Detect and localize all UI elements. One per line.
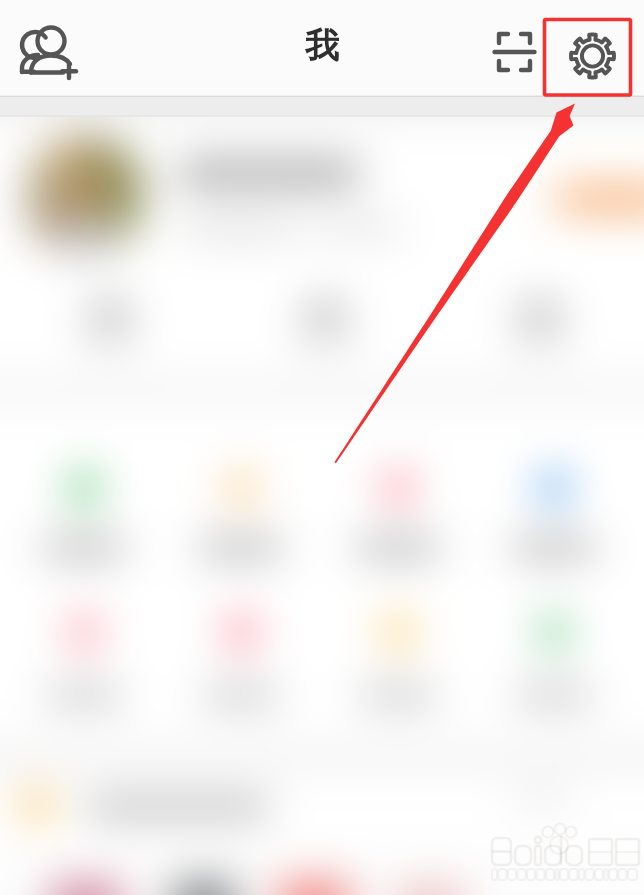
button[interactable]: Add friends bbox=[18, 24, 82, 78]
button[interactable]: Settings bbox=[543, 18, 632, 96]
staticText: 我 bbox=[305, 24, 339, 67]
button[interactable]: Scan QR code bbox=[489, 26, 541, 78]
